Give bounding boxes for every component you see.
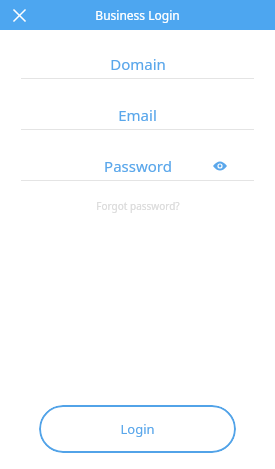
staticText: Login <box>120 420 155 438</box>
button[interactable]: Password <box>21 151 254 181</box>
staticText: Domain <box>110 54 166 74</box>
button[interactable]: Show password <box>210 156 230 176</box>
button[interactable]: Email <box>21 100 254 130</box>
button[interactable]: Close <box>7 3 31 27</box>
staticText: Forgot password? <box>96 199 180 213</box>
button[interactable]: Login <box>39 405 236 453</box>
button[interactable]: Forgot password? <box>0 199 275 213</box>
button[interactable]: Domain <box>21 49 254 79</box>
staticText: Business Login <box>95 7 180 23</box>
staticText: Password <box>104 156 172 176</box>
staticText: Email <box>118 105 157 125</box>
